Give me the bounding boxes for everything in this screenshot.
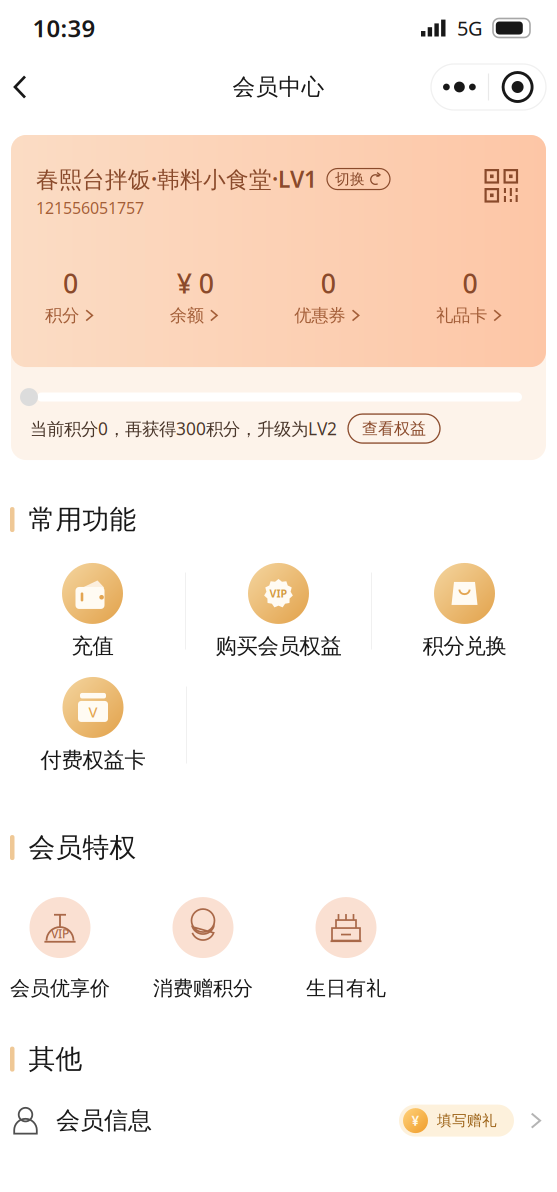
button[interactable]: VIP [186, 554, 371, 668]
button[interactable]: 生日有礼 [291, 897, 401, 1001]
staticText: 查看权益 [362, 419, 426, 438]
staticText: 充值 [71, 633, 113, 659]
button[interactable]: 返回 [0, 60, 50, 114]
button[interactable]: V [0, 668, 186, 782]
staticText: 余额 [170, 305, 204, 326]
button[interactable]: 会员码 [484, 164, 518, 202]
staticText: 121556051757 [36, 197, 144, 218]
staticText: 0 [462, 265, 477, 301]
staticText: 生日有礼 [306, 976, 386, 1001]
staticText: 常用功能 [28, 503, 136, 536]
staticText: ¥ [411, 1112, 419, 1129]
button[interactable]: 积分兑换 [372, 554, 557, 668]
staticText: VIP [269, 586, 287, 601]
staticText: 切换 [335, 170, 365, 188]
button[interactable]: 查看权益 [348, 414, 440, 443]
staticText: 10:39 [32, 12, 95, 44]
staticText: 5G [457, 15, 483, 41]
button[interactable]: 会员信息 [0, 1090, 557, 1152]
staticText: 消费赠积分 [153, 976, 253, 1001]
button[interactable]: 0 [45, 265, 96, 326]
button[interactable]: 更多 [431, 64, 488, 110]
staticText: 春熙台拌饭·韩料小食堂·LV1 [36, 164, 317, 194]
staticText: 0 [63, 265, 78, 301]
staticText: 0 [321, 265, 336, 301]
staticText: 积分 [45, 305, 79, 326]
staticText: 付费权益卡 [40, 747, 145, 773]
button[interactable]: ¥ 0 [170, 265, 221, 326]
staticText: 当前积分0，再获得300积分，升级为LV2 [30, 417, 337, 440]
staticText: 会员中心 [232, 73, 324, 101]
staticText: V [88, 702, 97, 721]
staticText: 优惠券 [294, 305, 345, 326]
staticText: VIP [51, 926, 69, 941]
staticText: 其他 [28, 1043, 82, 1075]
button[interactable]: 充值 [0, 554, 185, 668]
staticText: 购买会员权益 [215, 633, 341, 659]
staticText: 积分兑换 [422, 633, 506, 659]
staticText: 填写赠礼 [437, 1112, 497, 1130]
button[interactable]: 关闭 [489, 64, 546, 110]
staticText: 会员特权 [28, 831, 136, 864]
button[interactable]: 0 [436, 265, 504, 326]
button[interactable]: 消费赠积分 [148, 897, 258, 1001]
staticText: 礼品卡 [436, 305, 487, 326]
staticText: 会员优享价 [10, 976, 110, 1001]
button[interactable]: VIP [5, 897, 115, 1001]
staticText: 会员信息 [56, 1106, 152, 1135]
staticText: ¥ 0 [177, 265, 214, 301]
button[interactable]: 0 [294, 265, 362, 326]
button[interactable]: 切换 [327, 169, 390, 190]
